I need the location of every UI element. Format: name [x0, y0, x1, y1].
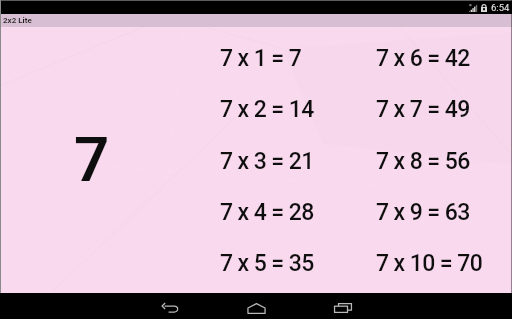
staticText: 2x2 Lite	[3, 16, 32, 25]
staticText: 7	[74, 123, 110, 196]
staticText: 7 x 6 = 42	[376, 45, 470, 72]
staticText: 7 x 2 = 14	[220, 96, 314, 123]
button[interactable]: 2x2 Lite	[0, 14, 512, 27]
staticText: 7 x 9 = 63	[376, 199, 470, 226]
staticText: 7 x 3 = 21	[220, 148, 314, 175]
button[interactable]: Recent apps	[299, 295, 387, 319]
staticText: 7 x 7 = 49	[376, 96, 470, 123]
staticText: 7 x 4 = 28	[220, 199, 314, 226]
staticText: 6:54	[491, 2, 510, 13]
staticText: 7 x 5 = 35	[220, 250, 314, 277]
button[interactable]: Home	[212, 295, 300, 319]
button[interactable]: Back	[126, 295, 214, 319]
staticText: 7 x 8 = 56	[376, 148, 470, 175]
staticText: 7 x 1 = 7	[220, 45, 302, 72]
staticText: 7 x 10 = 70	[376, 250, 483, 277]
